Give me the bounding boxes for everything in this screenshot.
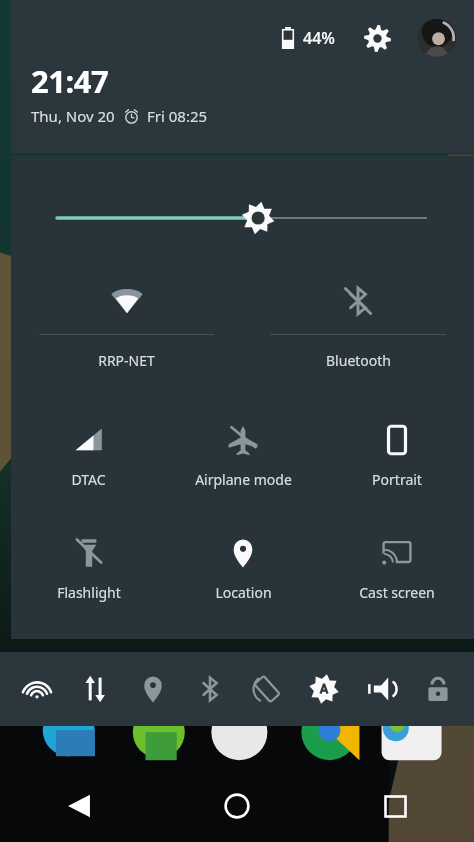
button[interactable]: Flashlight [11, 531, 166, 611]
staticText: RRP-NET [98, 351, 155, 370]
staticText: Location [215, 583, 272, 602]
button[interactable]: Bluetooth [181, 652, 238, 726]
staticText: Thu, Nov 20 [31, 106, 115, 126]
button[interactable]: Auto rotate [238, 652, 295, 726]
staticText: 21:47 [31, 60, 109, 102]
button[interactable]: DTAC [11, 418, 166, 498]
button[interactable]: Brightness [11, 200, 474, 236]
button[interactable]: Portrait [320, 418, 474, 498]
button[interactable]: Airplane mode [166, 418, 320, 498]
staticText: Portrait [372, 470, 422, 489]
button[interactable]: Lock [409, 652, 466, 726]
staticText: Flashlight [57, 583, 121, 602]
button[interactable]: User profile [418, 19, 456, 57]
staticText: Fri 08:25 [147, 106, 208, 126]
staticText: DTAC [71, 470, 106, 489]
button[interactable]: Mobile data [66, 652, 124, 726]
button[interactable]: Bluetooth [242, 278, 474, 378]
button[interactable]: Volume [352, 652, 409, 726]
staticText: Bluetooth [326, 351, 391, 370]
button[interactable]: Home [158, 770, 316, 842]
staticText: Cast screen [359, 583, 435, 602]
button[interactable]: Location [166, 531, 320, 611]
button[interactable]: Auto brightness [295, 652, 352, 726]
button[interactable]: Cast screen [320, 531, 474, 611]
staticText: 44% [303, 27, 335, 49]
button[interactable]: Settings [361, 22, 393, 54]
button[interactable]: Wi-Fi [8, 652, 66, 726]
button[interactable]: Back [0, 770, 158, 842]
button[interactable]: Recents [316, 770, 474, 842]
button[interactable]: RRP-NET [11, 278, 242, 378]
staticText: Airplane mode [195, 470, 292, 489]
button[interactable]: Location [124, 652, 181, 726]
